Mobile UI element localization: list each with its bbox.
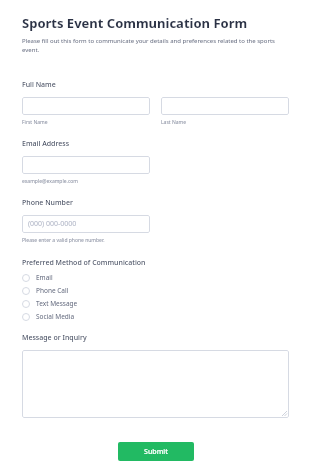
staticText: Phone Number <box>22 198 73 208</box>
button[interactable] <box>161 97 289 115</box>
staticText: First Name <box>22 119 48 126</box>
button[interactable] <box>22 97 150 115</box>
staticText: Message or Inquiry <box>22 333 87 343</box>
staticText: example@example.com <box>22 178 78 185</box>
button[interactable] <box>22 156 150 174</box>
button[interactable] <box>22 350 289 418</box>
button[interactable]: Text Message <box>22 297 289 310</box>
staticText: Text Message <box>36 299 78 308</box>
staticText: Sports Event Communication Form <box>22 14 248 32</box>
button[interactable]: Phone Call <box>22 284 289 297</box>
staticText: Preferred Method of Communication <box>22 258 146 268</box>
staticText: Full Name <box>22 80 56 90</box>
staticText: Social Media <box>36 312 75 321</box>
staticText: Email Address <box>22 139 70 149</box>
staticText: Please fill out this form to communicate… <box>22 37 289 54</box>
button[interactable]: (000) 000-0000 <box>22 215 150 233</box>
button[interactable]: Email <box>22 271 289 284</box>
staticText: Submit <box>144 447 168 457</box>
button[interactable]: Submit <box>118 442 194 461</box>
staticText: Last Name <box>161 119 187 126</box>
staticText: Phone Call <box>36 286 69 295</box>
button[interactable]: Social Media <box>22 310 289 323</box>
staticText: Please enter a valid phone number. <box>22 237 105 244</box>
staticText: Email <box>36 273 53 282</box>
staticText: (000) 000-0000 <box>28 219 77 229</box>
